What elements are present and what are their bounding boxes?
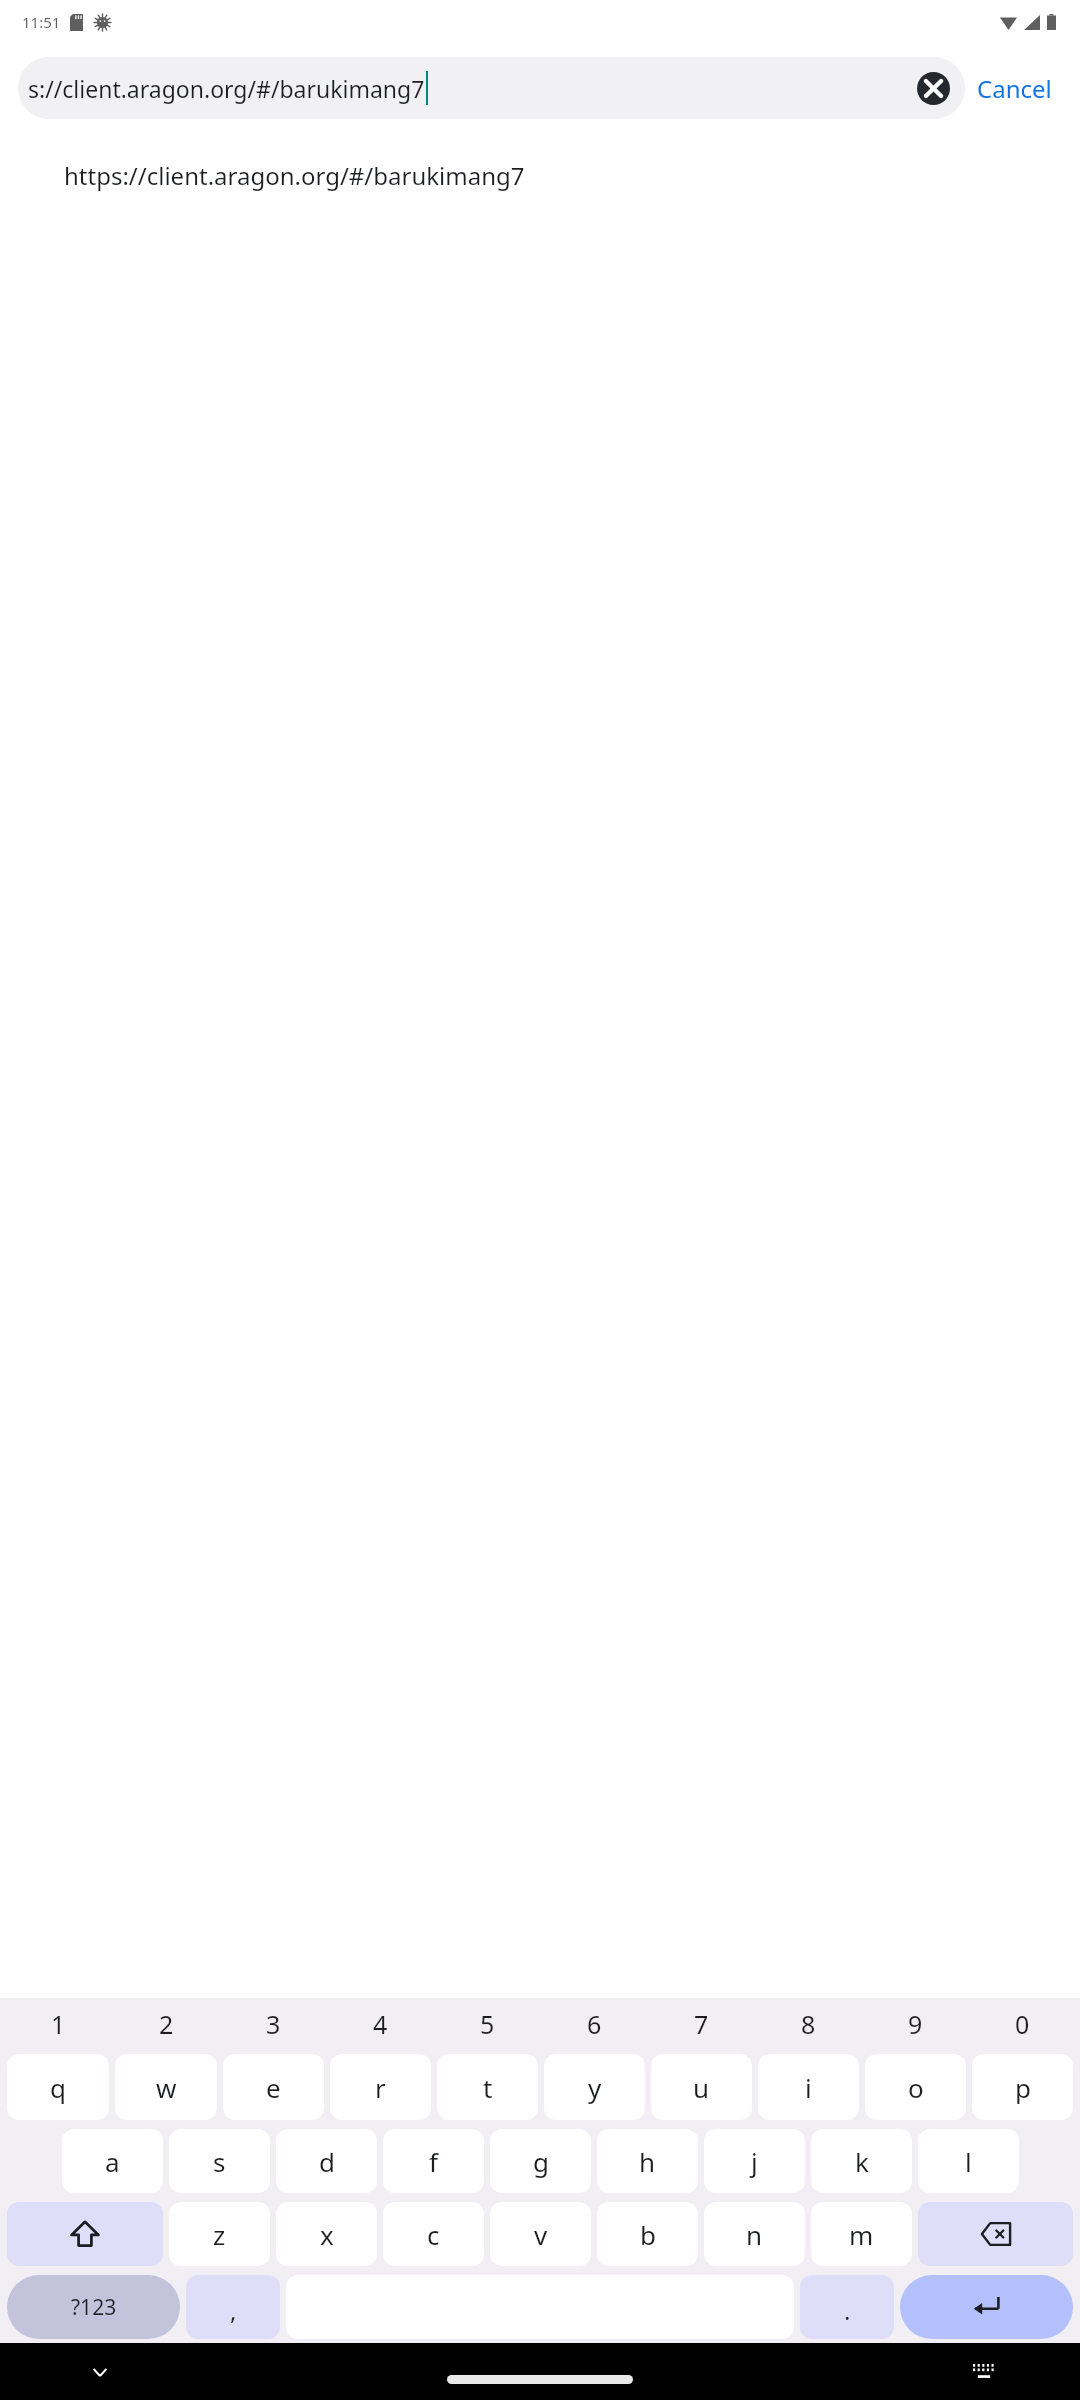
button[interactable]: Hide keyboard xyxy=(78,2350,122,2394)
staticText: g xyxy=(533,2144,549,2179)
button[interactable]: w xyxy=(115,2054,217,2120)
button[interactable]: l xyxy=(918,2129,1019,2193)
button[interactable]: 6 xyxy=(541,1998,648,2050)
button[interactable]: 1 xyxy=(4,1998,112,2050)
staticText: Cancel xyxy=(977,72,1052,105)
button[interactable]: m xyxy=(811,2202,912,2266)
button[interactable]: . xyxy=(800,2275,894,2339)
staticText: w xyxy=(156,2070,177,2105)
button[interactable]: b xyxy=(597,2202,698,2266)
staticText: t xyxy=(483,2070,493,2105)
button[interactable]: 9 xyxy=(862,1998,969,2050)
button[interactable]: a xyxy=(62,2129,163,2193)
button[interactable]: Enter xyxy=(900,2275,1073,2339)
button[interactable]: 5 xyxy=(434,1998,541,2050)
staticText: c xyxy=(427,2217,440,2252)
staticText: 2 xyxy=(159,2007,174,2041)
button[interactable]: i xyxy=(758,2054,859,2120)
staticText: o xyxy=(908,2070,924,2105)
staticText: m xyxy=(849,2217,874,2252)
button[interactable]: 8 xyxy=(755,1998,862,2050)
button[interactable]: Home xyxy=(447,2375,633,2384)
button[interactable]: z xyxy=(169,2202,270,2266)
button[interactable]: s xyxy=(169,2129,270,2193)
staticText: u xyxy=(693,2070,710,2105)
staticText: 1 xyxy=(51,2007,66,2041)
button[interactable]: , xyxy=(186,2275,280,2339)
staticText: z xyxy=(213,2217,226,2252)
button[interactable]: u xyxy=(651,2054,752,2120)
button[interactable]: y xyxy=(544,2054,645,2120)
button[interactable]: 7 xyxy=(648,1998,755,2050)
staticText: h xyxy=(639,2144,656,2179)
button[interactable]: s://client.aragon.org/#/barukimang7 xyxy=(18,57,965,119)
button[interactable]: ?123 xyxy=(7,2275,180,2339)
staticText: s xyxy=(213,2144,226,2179)
staticText: 5 xyxy=(480,2007,495,2041)
staticText: s://client.aragon.org/#/barukimang7 xyxy=(28,73,425,104)
button[interactable]: o xyxy=(865,2054,966,2120)
button[interactable]: q xyxy=(7,2054,109,2120)
staticText: 7 xyxy=(694,2007,709,2041)
button[interactable]: d xyxy=(276,2129,377,2193)
button[interactable]: n xyxy=(704,2202,805,2266)
staticText: p xyxy=(1015,2070,1031,2105)
staticText: b xyxy=(640,2217,656,2252)
staticText: j xyxy=(751,2144,758,2179)
button[interactable]: https://client.aragon.org/#/barukimang7 xyxy=(0,132,1080,218)
button[interactable]: 0 xyxy=(969,1998,1076,2050)
staticText: 3 xyxy=(266,2007,281,2041)
staticText: 8 xyxy=(801,2007,816,2041)
button[interactable]: f xyxy=(383,2129,484,2193)
staticText: q xyxy=(50,2070,66,2105)
staticText: , xyxy=(230,2294,237,2327)
button[interactable]: v xyxy=(490,2202,591,2266)
button[interactable]: Cancel xyxy=(965,64,1064,113)
staticText: 0 xyxy=(1015,2007,1030,2041)
button[interactable]: h xyxy=(597,2129,698,2193)
staticText: 9 xyxy=(908,2007,923,2041)
staticText: r xyxy=(375,2070,386,2105)
staticText: 4 xyxy=(373,2007,388,2041)
button[interactable]: 2 xyxy=(112,1998,220,2050)
button[interactable]: g xyxy=(490,2129,591,2193)
button[interactable]: Clear text xyxy=(911,66,955,110)
button[interactable]: r xyxy=(330,2054,431,2120)
button[interactable]: c xyxy=(383,2202,484,2266)
staticText: k xyxy=(855,2144,869,2179)
staticText: . xyxy=(844,2294,851,2327)
button[interactable]: Backspace xyxy=(918,2202,1073,2266)
staticText: i xyxy=(805,2070,812,2105)
staticText: https://client.aragon.org/#/barukimang7 xyxy=(64,159,525,192)
button[interactable]: e xyxy=(223,2054,324,2120)
staticText: f xyxy=(429,2144,438,2179)
staticText: y xyxy=(588,2070,602,2105)
button[interactable]: j xyxy=(704,2129,805,2193)
button[interactable]: Switch keyboard xyxy=(962,2350,1006,2394)
staticText: v xyxy=(534,2217,548,2252)
button[interactable]: 4 xyxy=(327,1998,434,2050)
staticText: x xyxy=(320,2217,334,2252)
staticText: e xyxy=(266,2070,281,2105)
button[interactable]: k xyxy=(811,2129,912,2193)
staticText: 6 xyxy=(587,2007,602,2041)
staticText: d xyxy=(319,2144,335,2179)
staticText: 11:51 xyxy=(22,12,61,32)
staticText: l xyxy=(965,2144,972,2179)
staticText: n xyxy=(746,2217,763,2252)
staticText: ?123 xyxy=(71,2293,117,2322)
button[interactable]: p xyxy=(972,2054,1073,2120)
button[interactable]: t xyxy=(437,2054,538,2120)
button[interactable]: x xyxy=(276,2202,377,2266)
button[interactable]: Shift xyxy=(7,2202,163,2266)
button[interactable]: 3 xyxy=(220,1998,327,2050)
staticText: a xyxy=(105,2144,120,2179)
